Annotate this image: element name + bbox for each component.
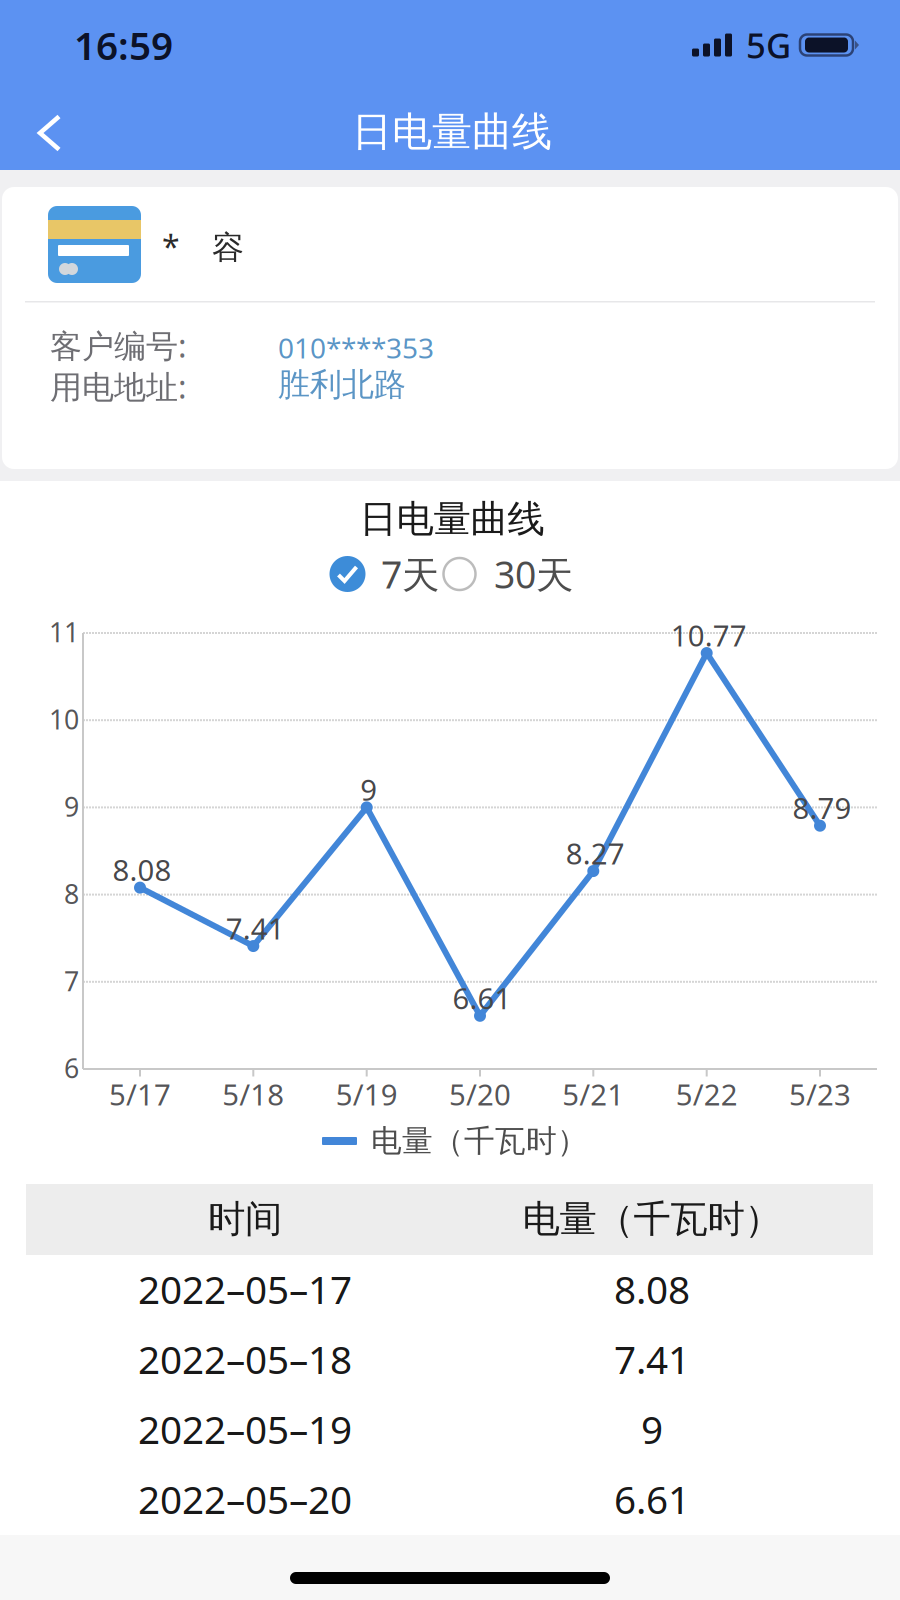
staticText: 客户编号: (50, 324, 187, 366)
staticText: 9 (64, 789, 79, 824)
staticText: 2022–05–18 (138, 1333, 352, 1385)
staticText: 5/18 (222, 1074, 284, 1113)
staticText: 2022–05–19 (138, 1403, 352, 1455)
staticText: 8.08 (614, 1263, 690, 1315)
staticText: 7天 (381, 549, 439, 599)
staticText: 6.61 (452, 978, 511, 1017)
staticText: 7 (64, 963, 79, 998)
staticText: 5/19 (336, 1074, 398, 1113)
staticText: 用电地址: (50, 365, 187, 407)
staticText: 7.41 (226, 909, 285, 948)
staticText: 9 (360, 770, 377, 809)
staticText: 2022–05–17 (138, 1263, 352, 1315)
staticText: 5/20 (449, 1074, 511, 1113)
button[interactable]: Back (0, 90, 90, 169)
staticText: 5/21 (562, 1074, 624, 1113)
staticText: 16:59 (74, 19, 173, 71)
staticText: 010****353 (278, 329, 434, 366)
button[interactable]: 30天 (439, 549, 573, 599)
button[interactable]: 7天 (327, 549, 439, 599)
staticText: 8.27 (566, 834, 625, 873)
staticText: 2022–05–20 (138, 1473, 352, 1525)
staticText: 日电量曲线 (352, 107, 552, 156)
staticText: 电量（千瓦时） (522, 1196, 781, 1242)
staticText: 5G (746, 22, 791, 68)
staticText: 胜利北路 (278, 365, 406, 404)
staticText: * 容 (162, 225, 244, 267)
staticText: 11 (49, 614, 79, 650)
staticText: 时间 (208, 1196, 282, 1242)
staticText: 8.08 (112, 850, 171, 889)
staticText: 6 (64, 1050, 79, 1086)
staticText: 7.41 (614, 1333, 690, 1385)
staticText: 6.61 (614, 1473, 690, 1525)
staticText: 9 (641, 1403, 663, 1455)
staticText: 电量（千瓦时） (371, 1122, 588, 1160)
staticText: 10.77 (671, 616, 747, 655)
staticText: 30天 (494, 549, 573, 599)
staticText: 日电量曲线 (359, 496, 544, 542)
staticText: 5/22 (676, 1074, 738, 1113)
staticText: 8.79 (792, 788, 851, 827)
staticText: 5/17 (109, 1074, 171, 1113)
staticText: 10 (49, 701, 79, 737)
staticText: 5/23 (789, 1074, 851, 1113)
staticText: 8 (64, 876, 79, 911)
